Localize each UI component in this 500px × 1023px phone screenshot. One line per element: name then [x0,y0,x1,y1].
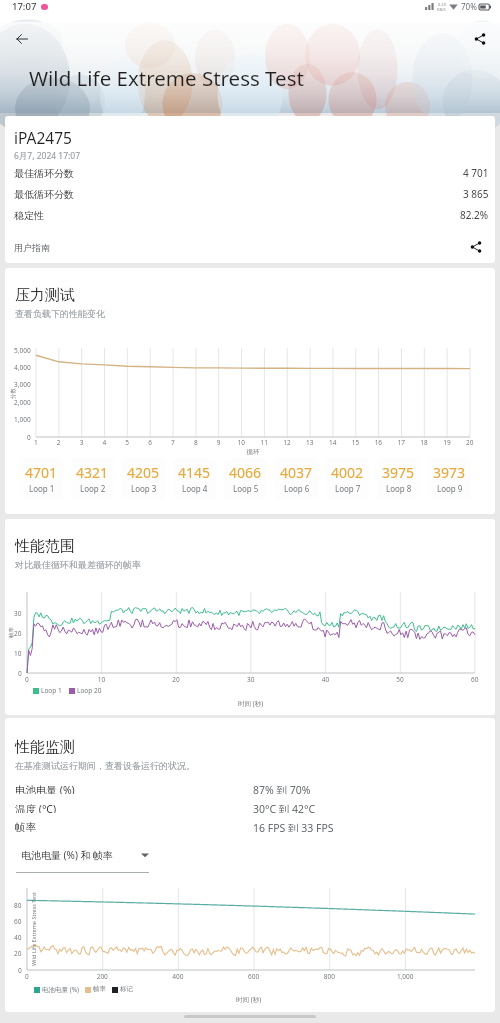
button[interactable]: 4037 [275,458,318,499]
staticText: 对比最佳循环和最差循环的帧率 [15,559,141,570]
button[interactable]: Share [463,22,497,56]
staticText: 4002 [331,463,364,482]
button[interactable]: 4002 [326,458,369,499]
staticText: 4701 [25,463,58,482]
staticText: Loop 5 [233,483,259,494]
staticText: 性能监测 [15,738,75,757]
staticText: 3 865 [463,187,489,201]
staticText: Loop 1 [29,483,55,494]
staticText: 在基准测试运行期间，查看设备运行的状况。 [15,760,195,771]
button[interactable]: 4205 [122,458,165,499]
staticText: iPA2475 [14,127,72,148]
staticText: 4321 [76,463,109,482]
staticText: 4037 [280,463,313,482]
staticText: 压力测试 [15,286,75,305]
staticText: 6月7, 2024 17:07 [14,150,81,162]
staticText: 查看负载下的性能变化 [15,308,105,319]
staticText: 4145 [178,463,211,482]
staticText: 温度 (°C) [15,802,57,813]
staticText: Loop 8 [386,483,412,494]
staticText: 3975 [382,463,415,482]
staticText: KB/S [437,7,446,12]
staticText: Wild Life Extreme Stress Test [29,64,304,92]
staticText: 30°C 到 42°C [253,802,316,813]
staticText: 最低循环分数 [14,188,74,201]
staticText: 帧率 [15,821,36,832]
button[interactable]: 4145 [173,458,216,499]
staticText: 电池电量 (%) 和 帧率 [21,848,114,862]
staticText: 3973 [433,463,466,482]
staticText: Loop 4 [182,483,208,494]
button[interactable]: 用户指南 [14,242,50,253]
button[interactable]: 3975 [377,458,420,499]
staticText: Loop 6 [284,483,310,494]
staticText: Loop 2 [80,483,106,494]
staticText: 70% [461,1,477,12]
button[interactable]: 电池电量 (%) 和 帧率 [21,847,149,863]
staticText: 4066 [229,463,262,482]
staticText: 0.20 [438,2,446,7]
staticText: 稳定性 [14,209,44,222]
staticText: 性能范围 [15,537,75,556]
staticText: 电池电量 (%) [15,783,75,794]
button[interactable]: 4066 [224,458,267,499]
staticText: 87% 到 70% [253,783,311,794]
staticText: 82.2% [460,208,489,222]
staticText: Loop 7 [335,483,361,494]
staticText: 16 FPS 到 33 FPS [253,821,334,832]
staticText: Loop 3 [131,483,157,494]
staticText: 最佳循环分数 [14,167,74,180]
staticText: 4 701 [463,166,489,180]
staticText: Loop 9 [437,483,463,494]
button[interactable]: 3973 [428,458,471,499]
button[interactable]: Back [5,22,39,56]
button[interactable]: 4321 [71,458,114,499]
staticText: 17:07 [12,0,37,13]
button[interactable]: 4701 [20,458,63,499]
staticText: 4205 [127,463,160,482]
button[interactable]: Share [467,238,485,256]
